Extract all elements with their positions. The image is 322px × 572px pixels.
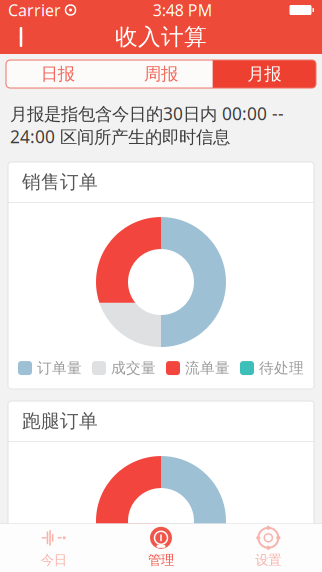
staticText: 管理 <box>148 552 174 568</box>
button[interactable]: 月报 <box>213 60 316 88</box>
staticText: 流单量 <box>185 359 230 377</box>
button[interactable]: 日报 <box>6 60 109 88</box>
staticText: 设置 <box>255 552 281 568</box>
staticText: 待处理 <box>259 359 304 377</box>
button[interactable]: 周报 <box>109 60 213 88</box>
staticText: 日报 <box>41 63 75 85</box>
staticText: Carrier <box>8 0 61 21</box>
button[interactable]: 今日 <box>0 524 107 572</box>
button[interactable]: 设置 <box>215 524 322 572</box>
staticText: 成交量 <box>111 359 156 377</box>
button[interactable]: 管理 <box>107 524 215 572</box>
staticText: 今日 <box>41 552 67 568</box>
button[interactable]: Back <box>10 22 32 52</box>
staticText: 销售订单 <box>22 171 98 193</box>
staticText: 月报 <box>247 63 281 85</box>
staticText: 订单量 <box>37 359 82 377</box>
staticText: 周报 <box>144 63 178 85</box>
staticText: 跑腿订单 <box>22 410 98 432</box>
staticText: 收入计算 <box>115 23 207 51</box>
staticText: 月报是指包含今日的30日内 00:00 -- 24:00 区间所产生的即时信息 <box>10 102 284 148</box>
staticText: 3:48 PM <box>153 0 213 21</box>
